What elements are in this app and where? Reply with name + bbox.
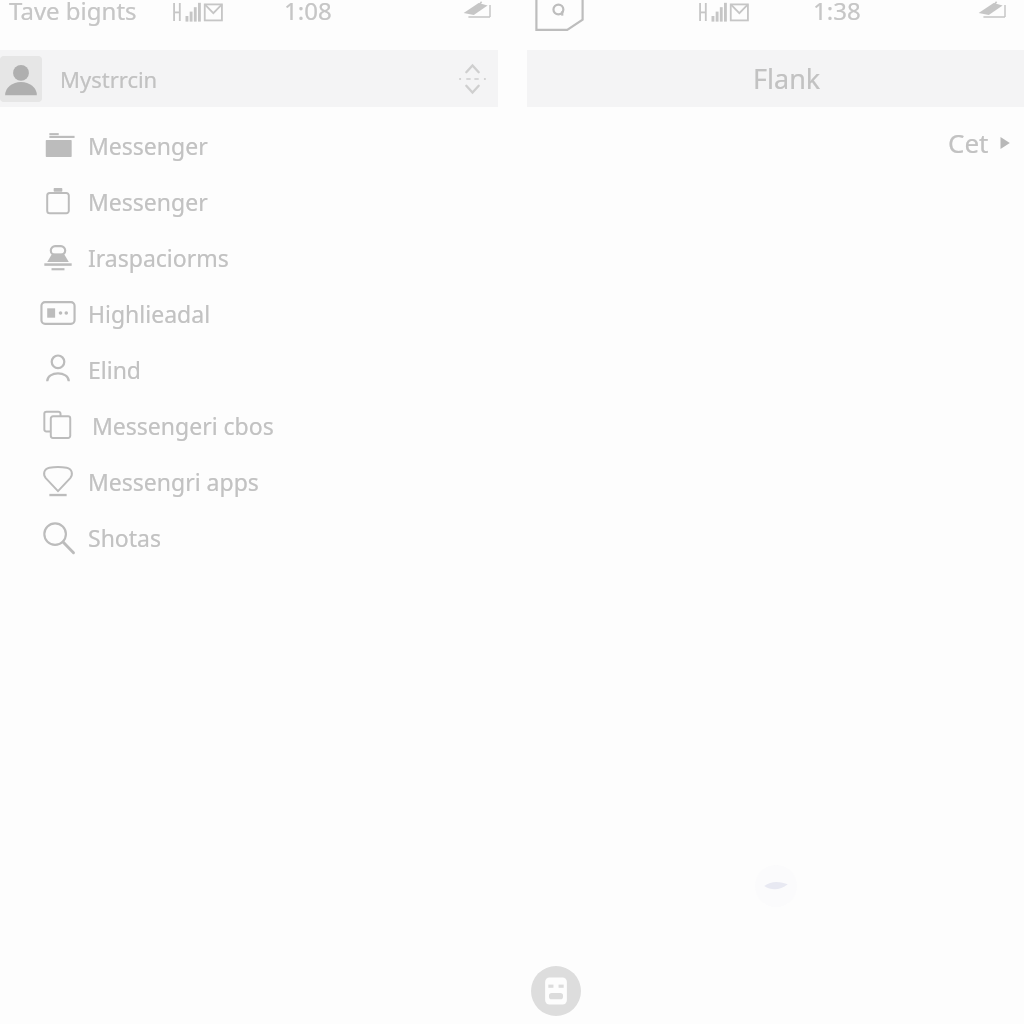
staticText: Flank (753, 60, 821, 97)
button[interactable]: Profile (531, 966, 581, 1016)
staticText: Messengri apps (88, 466, 259, 497)
staticText: Messengeri cbos (92, 410, 274, 441)
button[interactable]: Messenger (0, 117, 498, 173)
button[interactable]: Cet (948, 125, 1013, 160)
staticText: Messenger (88, 186, 208, 217)
button[interactable]: Messenger (0, 173, 498, 229)
button[interactable]: Elind (0, 341, 498, 397)
button[interactable]: Flank (527, 50, 1024, 107)
button[interactable]: Highlieadal (0, 285, 498, 341)
button[interactable]: Shotas (0, 509, 498, 565)
staticText: Tave bignts (9, 0, 137, 27)
staticText: Messenger (88, 130, 208, 161)
staticText: Cet (948, 125, 989, 160)
staticText: 1:38 (813, 0, 861, 27)
other: Note (532, 0, 587, 34)
staticText: Shotas (88, 522, 161, 553)
other: Sort (457, 62, 488, 96)
button[interactable]: Messengri apps (0, 453, 498, 509)
button[interactable]: Iraspaciorms (0, 229, 498, 285)
button[interactable]: Messengeri cbos (0, 397, 498, 453)
button[interactable]: Mystrrcin (0, 50, 498, 107)
staticText: 1:08 (284, 0, 332, 27)
staticText: Elind (88, 354, 142, 385)
staticText: Highlieadal (88, 298, 211, 329)
staticText: Mystrrcin (60, 64, 158, 94)
staticText: Iraspaciorms (88, 242, 229, 273)
